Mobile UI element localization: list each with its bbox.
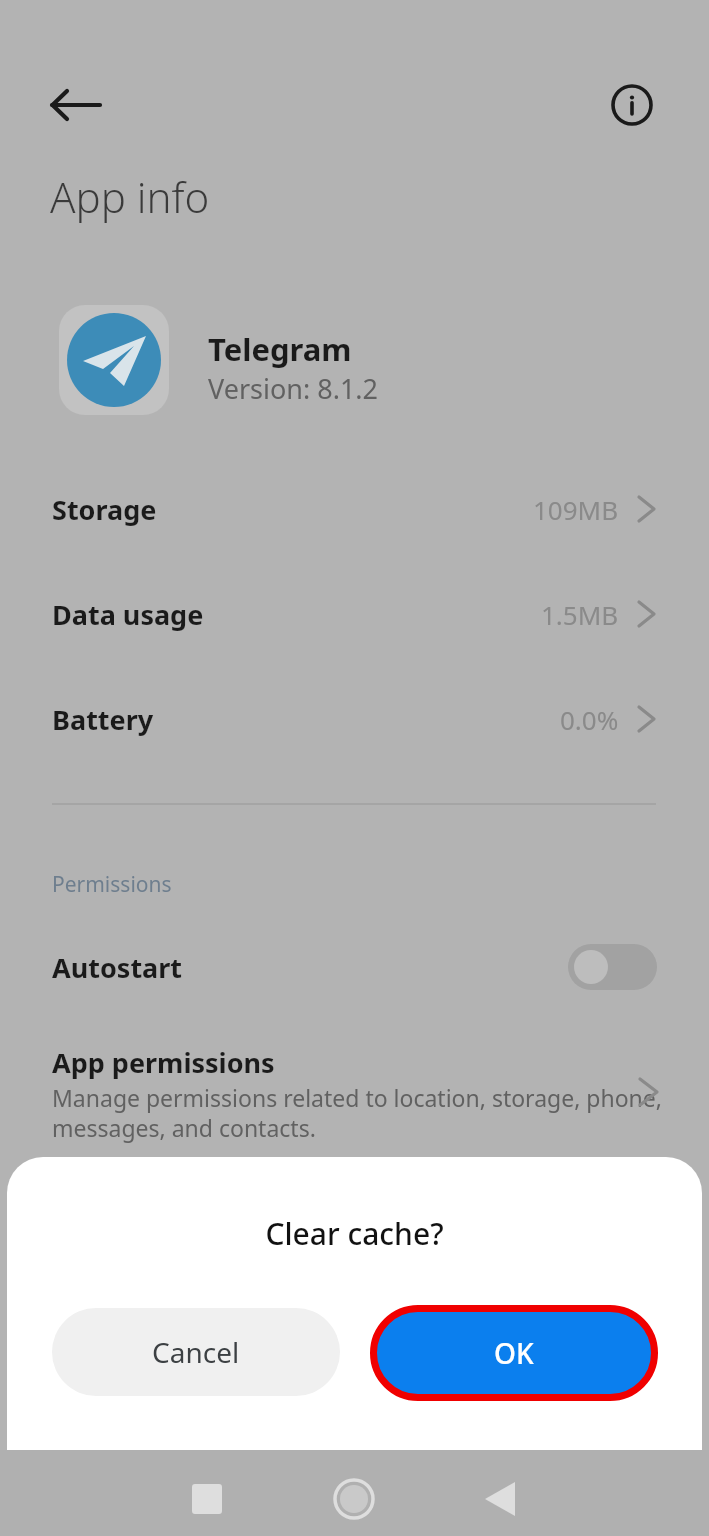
button[interactable]: Storage [0, 470, 709, 548]
button[interactable]: Cancel [52, 1308, 340, 1396]
staticText: 109MB [533, 492, 619, 527]
staticText: Storage [52, 491, 157, 528]
button[interactable]: Back [44, 73, 108, 137]
button[interactable]: App permissions [0, 1030, 709, 1150]
staticText: Battery [52, 701, 154, 738]
staticText: Telegram [208, 328, 352, 370]
staticText: Version: 8.1.2 [208, 370, 379, 407]
button[interactable]: Autostart [0, 925, 709, 1009]
button[interactable]: OK [370, 1305, 658, 1401]
button[interactable]: Data usage [0, 575, 709, 653]
button[interactable]: Home [319, 1464, 389, 1534]
staticText: 0.0% [560, 702, 619, 737]
staticText: Cancel [152, 1333, 240, 1371]
button[interactable]: Back [465, 1464, 535, 1534]
button[interactable]: App details [600, 73, 664, 137]
button[interactable]: Recent apps [172, 1464, 242, 1534]
staticText: Autostart [52, 949, 183, 986]
button[interactable]: Battery [0, 680, 709, 758]
staticText: App permissions [52, 1044, 275, 1081]
staticText: Manage permissions related to location, … [52, 1082, 662, 1144]
staticText: 1.5MB [541, 597, 619, 632]
staticText: App info [50, 168, 210, 225]
staticText: Permissions [52, 870, 172, 899]
staticText: Data usage [52, 596, 204, 633]
staticText: Clear cache? [7, 1213, 702, 1254]
staticText: OK [494, 1334, 534, 1372]
